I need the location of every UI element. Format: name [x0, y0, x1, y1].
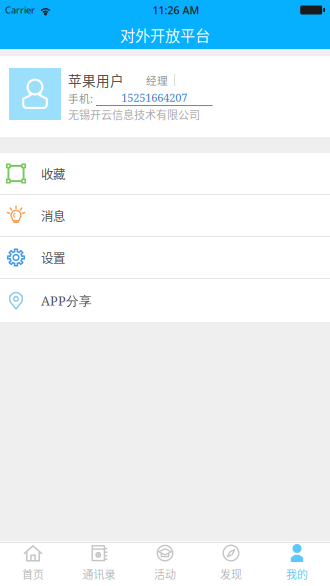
button[interactable]: 15251664207: [96, 90, 212, 106]
staticText: 手机:: [68, 90, 93, 106]
button[interactable]: 通讯录: [66, 543, 132, 586]
staticText: 我的: [286, 566, 308, 582]
staticText: 通讯录: [82, 566, 115, 582]
button[interactable]: 收藏: [0, 153, 330, 195]
staticText: 15251664207: [121, 90, 187, 105]
staticText: 苹果用户: [68, 70, 124, 90]
button[interactable]: 消息: [0, 195, 330, 237]
staticText: 首页: [22, 566, 44, 582]
button[interactable]: 发现: [198, 543, 264, 586]
button[interactable]: 对外开放平台: [120, 20, 210, 49]
staticText: 无锡开云信息技术有限公司: [68, 106, 200, 122]
staticText: 收藏: [41, 164, 65, 182]
button[interactable]: 设置: [0, 237, 330, 279]
staticText: 设置: [41, 248, 65, 266]
staticText: APP分享: [41, 292, 92, 309]
staticText: 11:26 AM: [153, 3, 200, 17]
button[interactable]: 我的: [264, 543, 330, 586]
staticText: 对外开放平台: [120, 23, 210, 45]
staticText: Carrier: [5, 4, 35, 16]
staticText: 活动: [154, 566, 176, 582]
button[interactable]: APP分享: [0, 279, 330, 322]
staticText: 经理: [146, 72, 168, 88]
staticText: 发现: [220, 566, 242, 582]
button[interactable]: 活动: [132, 543, 198, 586]
button[interactable]: 首页: [0, 543, 66, 586]
staticText: 消息: [41, 206, 65, 224]
